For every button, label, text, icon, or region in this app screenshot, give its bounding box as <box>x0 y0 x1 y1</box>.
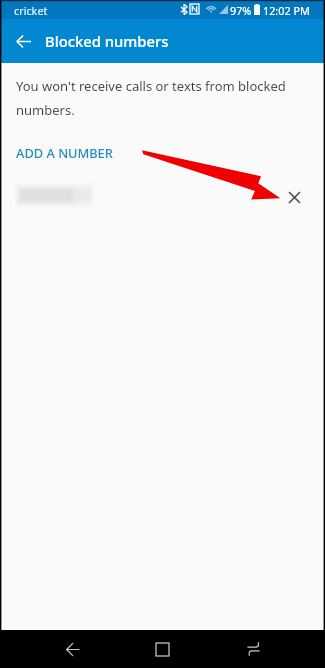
button[interactable]: Remove blocked number <box>0 175 325 209</box>
button[interactable]: Navigate up <box>8 26 39 57</box>
button[interactable]: Recent apps <box>237 633 269 665</box>
staticText: 12:02 PM <box>263 3 310 18</box>
button[interactable]: ADD A NUMBER <box>8 140 121 165</box>
staticText: 97% <box>230 3 252 18</box>
button[interactable]: Home <box>146 633 178 665</box>
staticText: ADD A NUMBER <box>16 144 113 161</box>
button[interactable]: Back <box>56 633 88 665</box>
staticText: cricket <box>14 3 48 18</box>
button[interactable]: Remove blocked number <box>279 182 309 212</box>
staticText: You won't receive calls or texts from bl… <box>16 77 291 119</box>
staticText: Blocked numbers <box>45 31 169 51</box>
